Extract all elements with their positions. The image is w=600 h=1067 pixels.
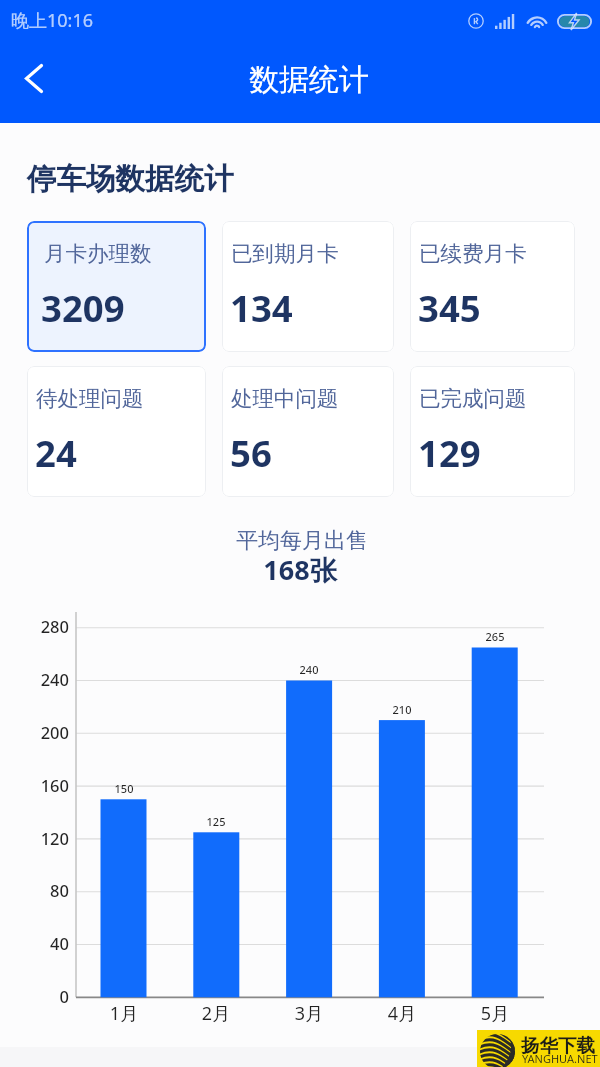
staticText: 200: [1, 721, 69, 743]
staticText: 240: [1, 668, 69, 690]
staticText: 80: [1, 879, 69, 901]
staticText: 晚上10:16: [11, 8, 94, 33]
staticText: 已完成问题: [419, 385, 527, 412]
staticText: 265: [465, 629, 525, 644]
staticText: 40: [1, 932, 69, 954]
staticText: 134: [230, 283, 293, 333]
staticText: 4月: [362, 1001, 442, 1026]
staticText: 1月: [84, 1001, 164, 1026]
staticText: 待处理问题: [36, 385, 144, 412]
button[interactable]: 待处理问题: [27, 366, 206, 497]
staticText: 150: [94, 781, 154, 796]
staticText: 已到期月卡: [231, 240, 339, 267]
staticText: 平均每月出售: [2, 527, 600, 555]
staticText: 345: [418, 283, 481, 333]
staticText: 240: [279, 662, 339, 677]
staticText: 120: [1, 827, 69, 849]
staticText: 0: [1, 985, 69, 1007]
staticText: 280: [1, 615, 69, 637]
staticText: 160: [1, 774, 69, 796]
staticText: 2月: [176, 1001, 256, 1026]
staticText: 168张: [0, 551, 600, 588]
staticText: 125: [186, 814, 246, 829]
staticText: 3月: [269, 1001, 349, 1026]
staticText: 数据统计: [249, 61, 369, 99]
button[interactable]: 已到期月卡: [222, 221, 394, 352]
staticText: YANGHUA.NET: [522, 1051, 598, 1066]
staticText: 停车场数据统计: [27, 161, 234, 198]
staticText: 5月: [455, 1001, 535, 1026]
button[interactable]: 已续费月卡: [410, 221, 575, 352]
button[interactable]: 处理中问题: [222, 366, 394, 497]
staticText: 扬华下载: [521, 1034, 595, 1057]
staticText: 已续费月卡: [419, 240, 527, 267]
button[interactable]: 月卡办理数: [27, 221, 206, 352]
staticText: 210: [372, 702, 432, 717]
button[interactable]: 返回: [6, 54, 62, 110]
button[interactable]: 已完成问题: [410, 366, 575, 497]
staticText: 3209: [41, 283, 125, 333]
staticText: 处理中问题: [231, 385, 339, 412]
staticText: 月卡办理数: [44, 240, 152, 267]
staticText: 129: [418, 428, 481, 478]
staticText: 24: [35, 428, 77, 478]
staticText: 56: [230, 428, 272, 478]
